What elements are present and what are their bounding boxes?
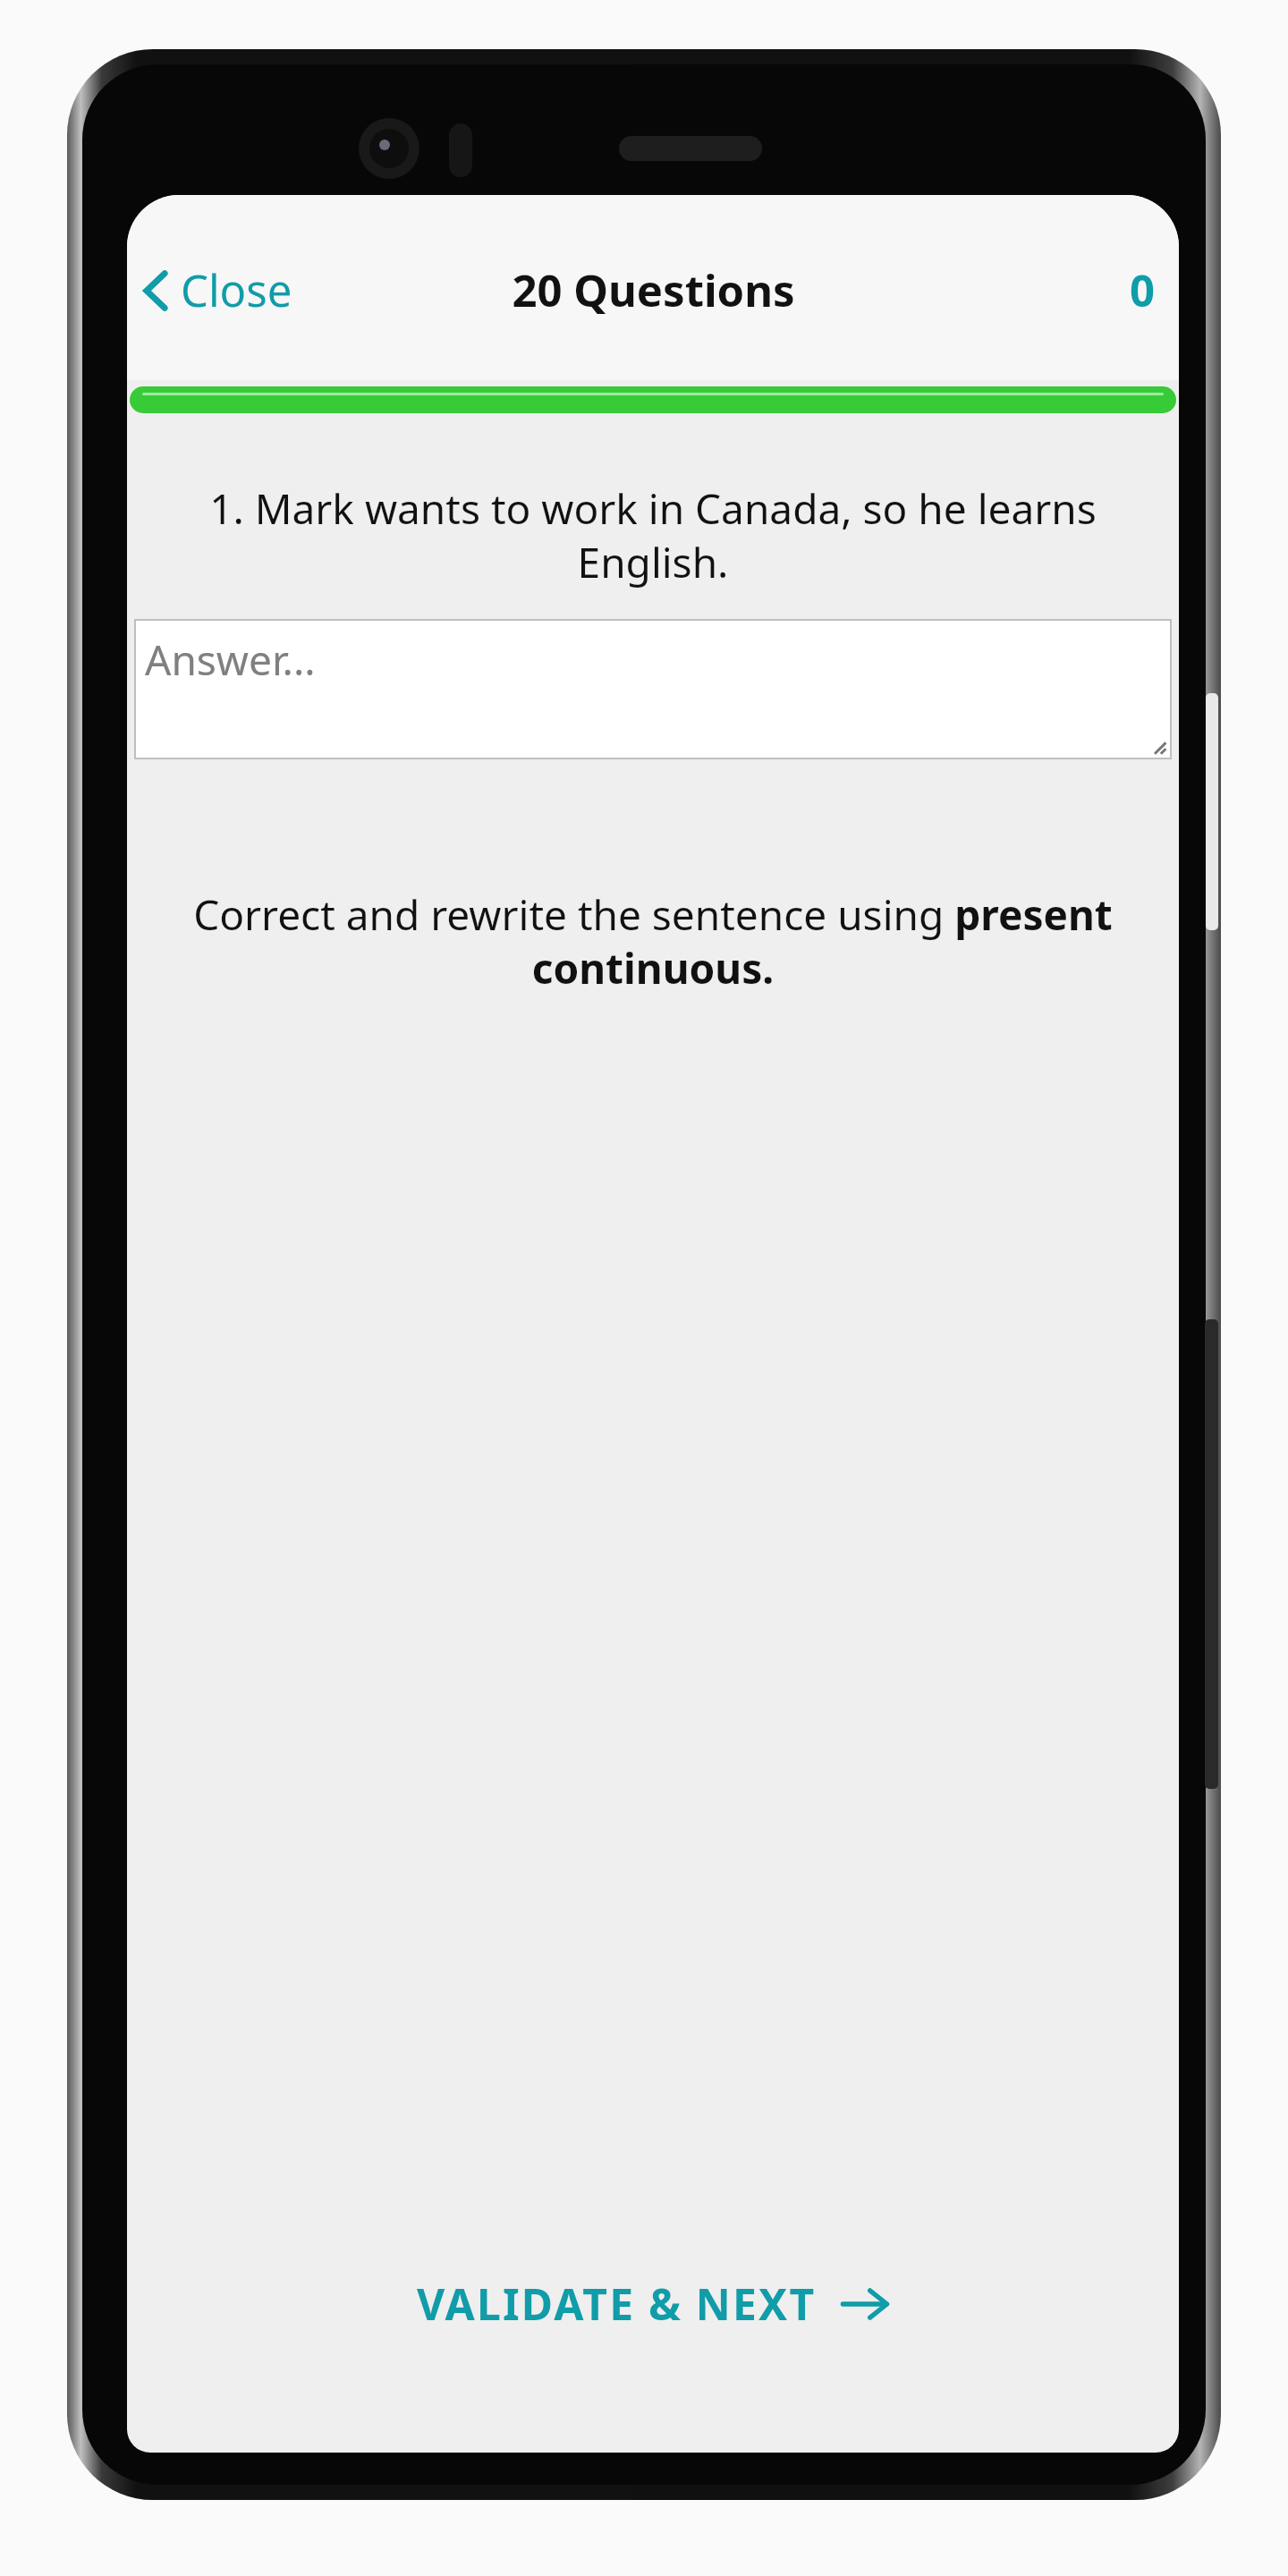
staticText: Close xyxy=(181,260,292,320)
button[interactable]: Answer... xyxy=(134,619,1172,759)
staticText: Correct and rewrite the sentence using p… xyxy=(163,886,1143,996)
staticText: 1. Mark wants to work in Canada, so he l… xyxy=(179,480,1127,590)
button[interactable]: 0 xyxy=(1106,248,1179,333)
staticText: Answer... xyxy=(145,631,316,688)
staticText: 0 xyxy=(1130,260,1156,320)
other: Next xyxy=(840,2284,890,2325)
button[interactable]: VALIDATE & NEXT xyxy=(381,2251,926,2356)
staticText: VALIDATE & NEXT xyxy=(417,2275,817,2333)
button[interactable]: Close xyxy=(127,248,309,333)
staticText: 20 Questions xyxy=(512,260,795,320)
